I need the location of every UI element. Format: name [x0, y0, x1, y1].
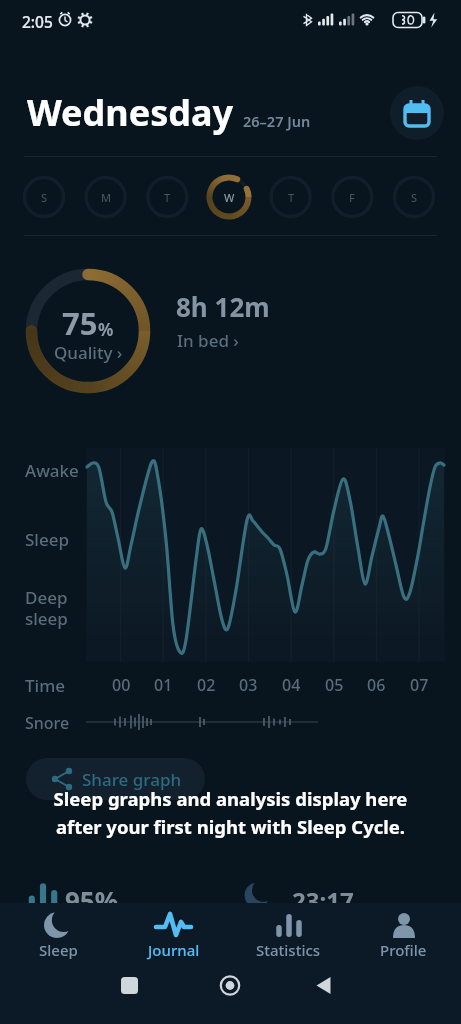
staticText: Deep sleep	[25, 586, 68, 630]
staticText: 04	[282, 674, 301, 696]
staticText: 07	[410, 674, 429, 696]
staticText: 26–27 Jun	[243, 111, 311, 131]
button[interactable]: Statistics	[231, 910, 346, 960]
button[interactable]: T	[147, 177, 187, 217]
staticText: Journal	[148, 940, 200, 960]
staticText: 03	[239, 674, 258, 696]
staticText: Statistics	[256, 940, 321, 960]
staticText: T	[164, 190, 171, 205]
staticText: 00	[112, 674, 131, 696]
staticText: F	[349, 190, 355, 205]
staticText: 2:05	[22, 11, 53, 32]
staticText: M	[101, 190, 112, 205]
staticText: Snore	[25, 712, 70, 734]
button[interactable]: S	[24, 177, 64, 217]
staticText: Quality ›	[54, 341, 123, 364]
button[interactable]: W	[209, 177, 249, 217]
staticText: 06	[367, 674, 386, 696]
staticText: 95%	[65, 883, 119, 918]
staticText: Wednesday	[27, 88, 234, 137]
button[interactable]: Sleep	[0, 910, 116, 960]
staticText: 02	[197, 674, 216, 696]
button[interactable]: T	[271, 177, 311, 217]
staticText: 05	[325, 674, 344, 696]
staticText: Awake	[25, 459, 79, 482]
staticText: Sleep graphs and analysis display here a…	[0, 786, 461, 839]
staticText: 01	[154, 674, 173, 696]
button[interactable]: Profile	[346, 910, 461, 960]
staticText: 8h 12m	[176, 289, 270, 324]
staticText: Share graph	[82, 768, 182, 791]
staticText: %	[98, 318, 114, 341]
staticText: In bed ›	[177, 329, 239, 352]
staticText: Time	[25, 674, 66, 697]
button[interactable]: 75	[18, 302, 158, 344]
button[interactable]: Journal	[116, 910, 231, 960]
button[interactable]: S	[394, 177, 434, 217]
staticText: T	[288, 190, 295, 205]
staticText: 75	[62, 302, 98, 344]
staticText: S	[411, 190, 418, 205]
staticText: Profile	[380, 940, 427, 960]
button[interactable]: F	[332, 177, 372, 217]
staticText: Sleep	[39, 940, 78, 960]
staticText: 23:17	[292, 884, 354, 917]
button[interactable]: Share graph	[26, 758, 205, 800]
staticText: Sleep	[25, 528, 69, 551]
staticText: S	[41, 190, 48, 205]
button[interactable]	[390, 86, 444, 140]
staticText: W	[224, 190, 235, 205]
button[interactable]: M	[86, 177, 126, 217]
